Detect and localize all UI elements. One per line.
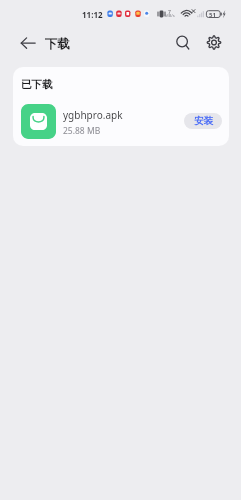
staticText: 下载 [45, 36, 70, 52]
button[interactable]: Back [15, 31, 39, 55]
button[interactable]: 安装 [184, 113, 222, 129]
staticText: 11:12 [82, 9, 103, 20]
staticText: MB/s [165, 13, 175, 18]
staticText: 安装 [194, 115, 213, 127]
button[interactable]: Search [170, 31, 194, 55]
button[interactable]: ygbhpro.apk [13, 101, 229, 141]
staticText: 25.88 MB [63, 125, 101, 137]
staticText: 已下载 [21, 78, 53, 91]
staticText: ygbhpro.apk [63, 108, 123, 122]
staticText: 7 [168, 9, 171, 16]
button[interactable]: Settings [202, 31, 226, 55]
staticText: 51 [209, 11, 216, 19]
